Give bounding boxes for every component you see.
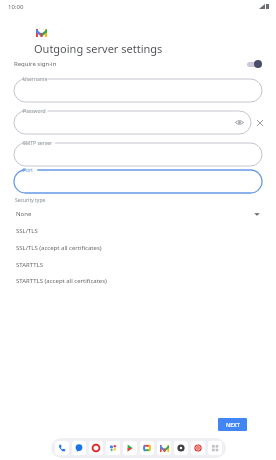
button[interactable]: Screen record [191,441,205,455]
button[interactable]: Username [14,79,262,102]
staticText: Password [23,108,46,115]
button[interactable]: Gmail [157,441,171,455]
staticText: None [16,210,32,218]
button[interactable]: All apps [208,441,222,455]
staticText: SMTP server [23,140,53,147]
button[interactable]: SSL/TLS (accept all certificates) [12,239,249,256]
button[interactable]: STARTTLS [12,256,249,273]
staticText: Username [23,76,48,83]
staticText: Port [23,167,33,174]
button[interactable]: SSL/TLS [12,222,249,239]
button[interactable]: Show password [235,118,244,127]
button[interactable]: Port [14,170,262,193]
button[interactable]: SMTP server [14,143,262,166]
button[interactable]: Play Store [123,441,137,455]
staticText: STARTTLS (accept all certificates) [16,277,107,285]
button[interactable]: STARTTLS (accept all certificates) [12,273,249,288]
staticText: SSL/TLS [16,227,38,235]
button[interactable]: Password [14,111,251,134]
button[interactable]: Photos [140,441,154,455]
staticText: NEXT [226,421,240,428]
staticText: SSL/TLS (accept all certificates) [16,244,102,252]
staticText: Security type [15,197,46,204]
button[interactable]: Phone [55,441,69,455]
button[interactable]: NEXT [218,418,247,431]
button[interactable]: Clear [255,118,265,128]
button[interactable]: Settings [174,441,188,455]
button[interactable]: None [12,205,249,222]
staticText: Require sign-in [14,60,57,68]
button[interactable]: Opera [89,441,103,455]
staticText: 10:00 [8,3,24,11]
button[interactable]: Security type dropdown [252,209,262,219]
staticText: STARTTLS [16,261,44,269]
button[interactable]: Messages [72,441,86,455]
button[interactable]: Require sign-in [0,57,276,71]
button[interactable]: Assistant [106,441,120,455]
staticText: Outgoing server settings [34,41,163,56]
